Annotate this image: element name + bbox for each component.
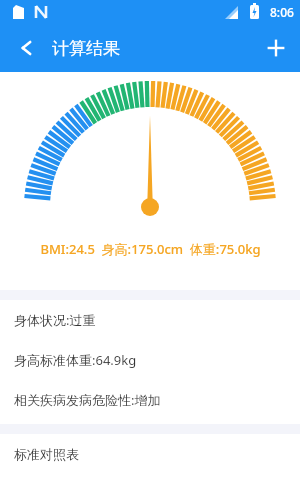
staticText: 标准对照表 [14, 446, 79, 462]
button[interactable]: Add [252, 24, 300, 72]
staticText: 身高标准体重:64.9kg [14, 351, 137, 369]
staticText: 身体状况:过重 [14, 311, 96, 329]
staticText: 8:06 [270, 4, 294, 20]
button[interactable]: 相关疾病发病危险性:增加 [0, 380, 300, 420]
button[interactable]: 标准对照表 [0, 434, 300, 474]
staticText: 相关疾病发病危险性:增加 [14, 391, 161, 409]
button[interactable]: 身体状况:过重 [0, 300, 300, 340]
staticText: BMI:24.5 身高:175.0cm 体重:75.0kg [40, 240, 261, 258]
staticText: 计算结果 [52, 38, 120, 59]
button[interactable]: Back [0, 24, 48, 72]
button[interactable]: 身高标准体重:64.9kg [0, 340, 300, 380]
